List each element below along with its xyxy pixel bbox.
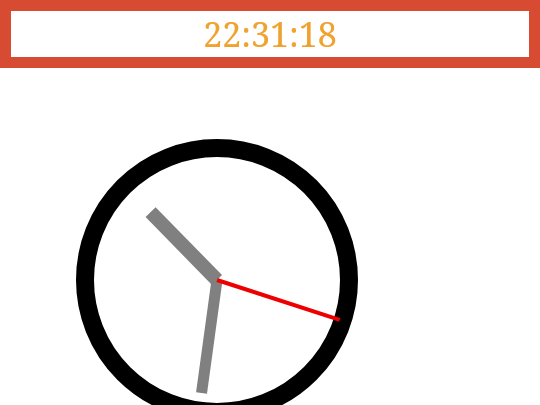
staticText: 22:31:18 — [203, 11, 337, 57]
button[interactable]: 22:31:18 — [11, 11, 529, 57]
other: Analog clock showing 22:31:18 — [0, 0, 540, 405]
